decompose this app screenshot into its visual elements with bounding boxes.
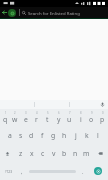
button[interactable]: 7 [64,109,75,126]
button[interactable]: 5 [42,109,53,126]
staticText: 6 [58,111,60,115]
staticText: n [73,149,78,158]
staticText: q [3,115,8,124]
button[interactable]: h [59,126,70,144]
button[interactable]: , [17,162,27,180]
staticText: . [82,168,84,175]
button[interactable]: z [15,144,26,162]
button[interactable]: 6 [53,109,64,126]
staticText: x [30,149,34,158]
staticText: o [89,115,94,124]
staticText: 1 [5,111,7,115]
button[interactable]: m [81,144,92,162]
staticText: 0 [102,111,104,115]
staticText: h [62,131,67,140]
staticText: z [19,149,23,158]
staticText: 7 [69,111,71,115]
staticText: Search for Enlisted Rating [28,10,80,16]
staticText: i [80,115,82,124]
button[interactable]: Space [27,162,78,180]
button[interactable]: l [92,126,103,144]
staticText: 5 [47,111,49,115]
button[interactable]: n [70,144,81,162]
button[interactable]: Enter [88,162,108,180]
button[interactable]: x [26,144,37,162]
button[interactable]: 1 [0,109,10,126]
button[interactable]: a [4,126,15,144]
staticText: m [83,149,90,158]
button[interactable]: Back [1,9,8,16]
button[interactable]: 4 [31,109,42,126]
staticText: 3 [25,111,27,115]
staticText: j [75,131,77,140]
staticText: s [19,131,23,140]
button[interactable]: d [26,126,37,144]
staticText: v [52,149,56,158]
other: Search [22,11,26,15]
staticText: l [97,131,99,140]
staticText: d [29,131,34,140]
staticText: 2 [14,111,16,115]
button[interactable]: k [81,126,92,144]
button[interactable]: App logo [8,9,16,17]
button[interactable]: 8 [75,109,86,126]
button[interactable]: Backspace [92,144,108,162]
button[interactable]: ?123 [0,162,17,180]
button[interactable]: 9 [86,109,97,126]
staticText: g [51,131,56,140]
button[interactable]: b [59,144,70,162]
button[interactable]: s [15,126,26,144]
button[interactable]: j [70,126,81,144]
button[interactable]: g [48,126,59,144]
staticText: ?123 [5,169,13,173]
button[interactable]: Shift [0,144,15,162]
button[interactable]: 2 [10,109,20,126]
staticText: 8 [80,111,82,115]
staticText: t [46,115,49,124]
staticText: a [8,131,12,140]
staticText: e [24,115,28,124]
button[interactable]: Voice input [97,100,108,109]
button[interactable]: f [37,126,48,144]
staticText: 9 [91,111,93,115]
staticText: w [12,115,18,124]
button[interactable]: v [48,144,59,162]
staticText: r [35,115,38,124]
staticText: p [100,115,105,124]
button[interactable]: 0 [97,109,108,126]
button[interactable]: . [78,162,88,180]
staticText: u [67,115,72,124]
button[interactable]: 3 [20,109,31,126]
staticText: 4 [36,111,38,115]
staticText: b [62,149,67,158]
staticText: k [85,131,89,140]
staticText: c [41,149,45,158]
button[interactable]: c [37,144,48,162]
staticText: , [21,168,23,175]
staticText: f [41,131,44,140]
button[interactable]: Search for Enlisted Rating [28,7,108,18]
staticText: y [57,115,61,124]
